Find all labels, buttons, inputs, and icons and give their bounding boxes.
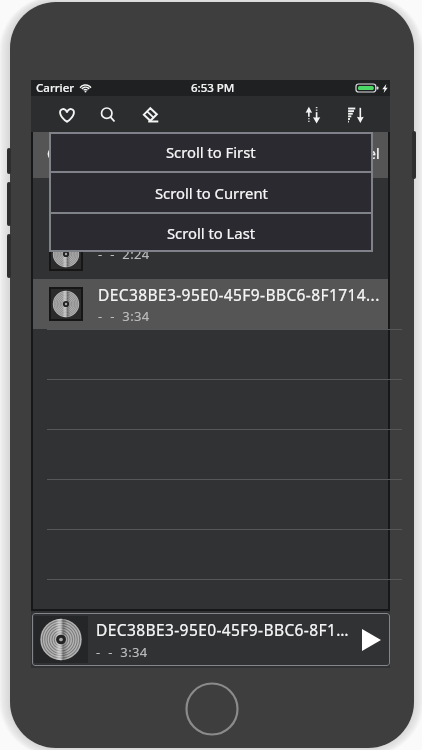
button[interactable] [33, 178, 388, 229]
staticText: Cancel [336, 144, 380, 163]
button[interactable]: Scroll to First [49, 132, 373, 171]
button[interactable] [33, 529, 388, 579]
staticText: Carrier [36, 80, 75, 96]
button[interactable]: Play [354, 616, 388, 663]
button[interactable] [33, 579, 388, 609]
button[interactable] [33, 429, 388, 479]
staticText: DEC38BE3-95E0-45F9-BBC6-8F17... [96, 619, 354, 640]
button[interactable]: DEC38BE3-95E0-45F9-BBC6-8F1714... [33, 279, 388, 329]
staticText: Scroll to First [166, 142, 256, 162]
button[interactable]: Erase [139, 104, 161, 126]
button[interactable] [33, 329, 388, 379]
staticText: 6:53 PM [191, 80, 235, 96]
button[interactable]: Sort direction [302, 104, 324, 126]
staticText: - - 2:24 [98, 245, 150, 263]
button[interactable]: Scroll to Last [49, 213, 373, 252]
button[interactable]: DEC38BE3-95E0-45F9-BBC6-8F17... [32, 613, 390, 666]
staticText: DEC38BE3-95E0-45F9-BBC6-8F1714... [98, 284, 380, 305]
staticText: - - 3:34 [98, 307, 150, 325]
staticText: - - 3:34 [96, 643, 148, 661]
button[interactable]: C [33, 129, 388, 178]
button[interactable] [33, 479, 388, 529]
button[interactable]: Search [97, 104, 119, 126]
staticText: Scroll to Last [167, 223, 256, 243]
button[interactable] [33, 379, 388, 429]
button[interactable]: - - 2:24 [33, 229, 388, 279]
button[interactable] [49, 214, 373, 252]
button[interactable] [49, 173, 373, 212]
staticText: C [47, 144, 56, 163]
staticText: Scroll to Current [155, 183, 268, 203]
button[interactable]: Scroll to Current [49, 173, 373, 212]
button[interactable]: Sort [345, 104, 367, 126]
button[interactable] [49, 132, 373, 171]
button[interactable]: Favourites [56, 104, 78, 126]
